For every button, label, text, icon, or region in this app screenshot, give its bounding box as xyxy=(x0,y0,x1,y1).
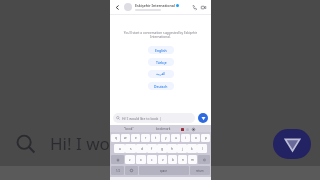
button[interactable]: o xyxy=(191,134,200,142)
staticText: z xyxy=(129,158,131,162)
button[interactable]: y xyxy=(161,134,170,142)
staticText: e xyxy=(135,136,137,140)
button[interactable]: c xyxy=(147,155,157,164)
button[interactable]: f xyxy=(147,144,157,153)
button[interactable]: e xyxy=(131,134,140,142)
button[interactable]: Türkçe xyxy=(148,58,174,66)
button[interactable]: English xyxy=(148,46,174,54)
staticText: b xyxy=(172,158,174,162)
button[interactable]: u xyxy=(171,134,180,142)
button[interactable]: bookmark xyxy=(146,127,181,131)
staticText: t xyxy=(155,136,157,140)
button[interactable]: q xyxy=(111,134,120,142)
staticText: i xyxy=(185,136,186,140)
button[interactable]: m xyxy=(188,155,197,164)
button[interactable]: j xyxy=(177,144,187,153)
staticText: w xyxy=(124,136,127,140)
staticText: العربية xyxy=(156,72,166,76)
staticText: c xyxy=(151,158,153,162)
staticText: f xyxy=(151,147,153,151)
staticText: k xyxy=(191,147,193,151)
button[interactable]: 1/2 xyxy=(111,166,124,175)
staticText: j xyxy=(182,147,183,151)
button[interactable]: d xyxy=(136,144,147,153)
button[interactable]: Backspace xyxy=(198,155,210,164)
button[interactable]: Send xyxy=(198,113,208,123)
staticText: u xyxy=(175,136,177,140)
button[interactable]: Send xyxy=(273,129,311,159)
other: Search xyxy=(14,133,36,155)
button[interactable]: العربية xyxy=(148,70,174,78)
staticText: You'll start a conversation suggested by… xyxy=(116,31,205,39)
staticText: p xyxy=(205,136,207,140)
staticText: a xyxy=(119,147,121,151)
button[interactable]: Emoji xyxy=(125,166,138,175)
staticText: bookmark xyxy=(156,127,171,131)
button[interactable]: "book" xyxy=(112,127,146,131)
staticText: English xyxy=(155,48,167,53)
button[interactable]: n xyxy=(178,155,187,164)
staticText: g xyxy=(161,147,163,151)
staticText: return xyxy=(196,169,204,173)
button[interactable]: r xyxy=(141,134,150,142)
button[interactable]: Call xyxy=(190,3,199,12)
button[interactable]: x xyxy=(136,155,146,164)
button[interactable]: i xyxy=(181,134,190,142)
staticText: v xyxy=(162,158,164,162)
staticText: h xyxy=(171,147,173,151)
button[interactable]: h xyxy=(167,144,177,153)
button[interactable]: k xyxy=(187,144,197,153)
button[interactable]: return xyxy=(190,166,210,175)
button[interactable]: p xyxy=(201,134,210,142)
button[interactable]: g xyxy=(157,144,167,153)
button[interactable]: l xyxy=(197,144,207,153)
staticText: l xyxy=(202,147,203,151)
staticText: Türkçe xyxy=(156,60,167,65)
button[interactable]: Back xyxy=(113,3,122,12)
button[interactable]: a xyxy=(114,144,125,153)
button[interactable]: Search xyxy=(12,130,151,157)
button[interactable]: space xyxy=(139,166,189,175)
button[interactable]: s xyxy=(125,144,136,153)
button[interactable]: t xyxy=(151,134,160,142)
staticText: Hi! I would li xyxy=(50,132,149,155)
staticText: r xyxy=(145,136,147,140)
button[interactable]: Video call xyxy=(199,3,208,12)
button[interactable]: z xyxy=(125,155,135,164)
staticText: y xyxy=(165,136,167,140)
button[interactable]: Hi! I would like to book | xyxy=(113,113,195,123)
staticText: o xyxy=(195,136,197,140)
staticText: m xyxy=(191,158,194,162)
staticText: Deutsch xyxy=(154,84,168,89)
staticText: s xyxy=(130,147,132,151)
button[interactable]: Deutsch xyxy=(148,82,174,90)
button[interactable]: Shift xyxy=(111,155,124,164)
staticText: n xyxy=(182,158,184,162)
button[interactable]: v xyxy=(158,155,167,164)
staticText: d xyxy=(141,147,143,151)
button[interactable]: b xyxy=(168,155,177,164)
staticText: q xyxy=(115,136,117,140)
button[interactable]: Keyboard settings xyxy=(191,127,195,131)
staticText: Eskişehir International xyxy=(135,3,175,8)
staticText: "book" xyxy=(124,127,134,131)
staticText: 1/2 xyxy=(116,169,120,173)
button[interactable]: w xyxy=(121,134,130,142)
staticText: space xyxy=(160,169,168,173)
staticText: Hi! I would like to book | xyxy=(122,116,162,121)
staticText: x xyxy=(140,158,142,162)
